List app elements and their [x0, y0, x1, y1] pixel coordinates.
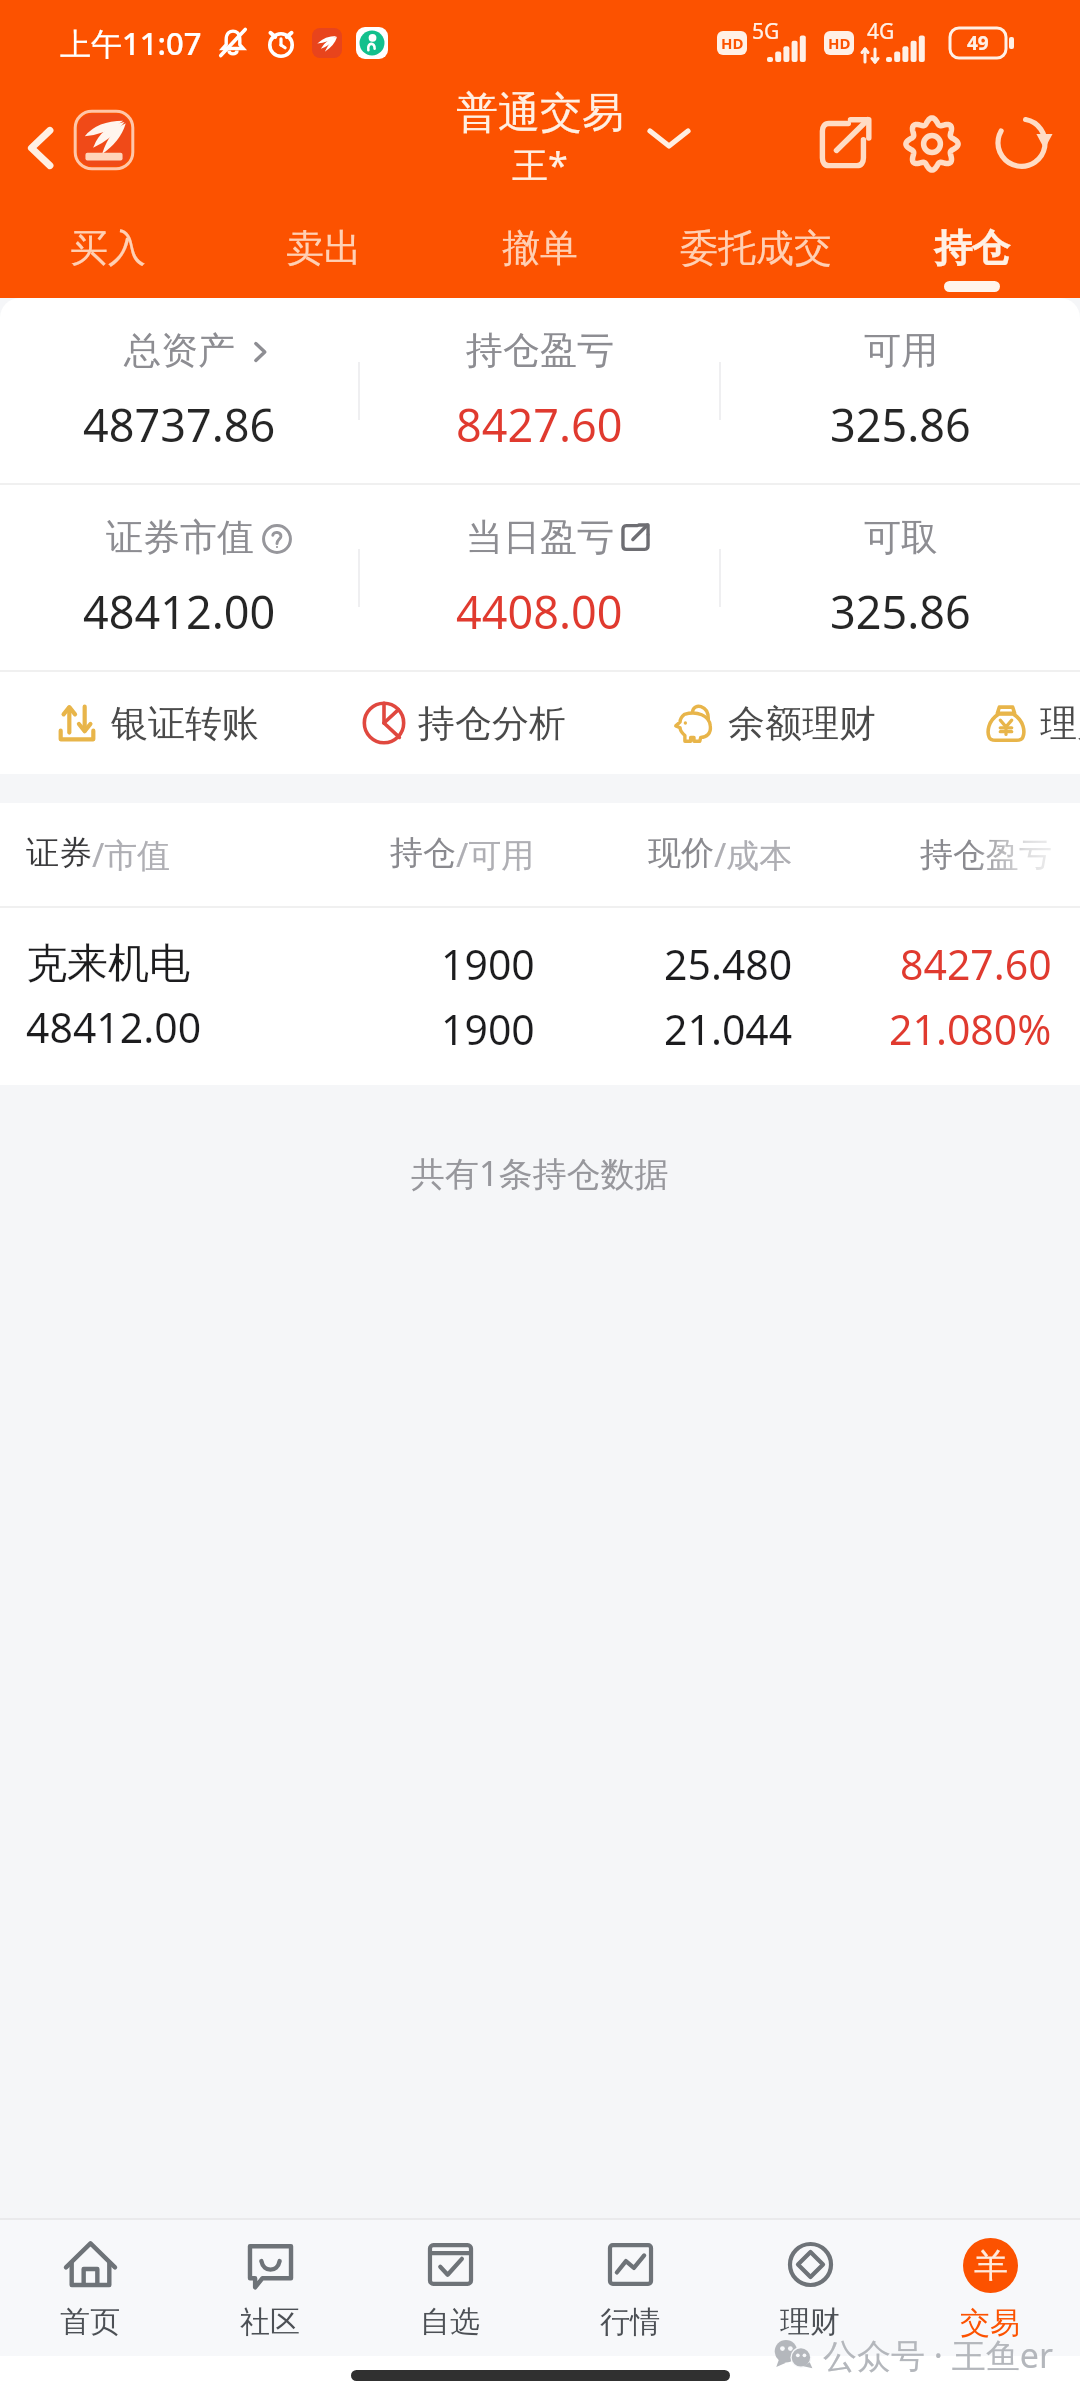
- staticText: HD: [721, 33, 744, 53]
- staticText: 共有1条持仓数据: [411, 1150, 669, 1196]
- button[interactable]: 可用: [721, 298, 1080, 483]
- staticText: 行情: [600, 2303, 660, 2341]
- staticText: 撤单: [502, 224, 578, 272]
- staticText: 可用: [864, 327, 938, 374]
- button[interactable]: 持仓: [864, 212, 1080, 300]
- staticText: 上午11:07: [60, 22, 202, 64]
- button[interactable]: Switch account: [604, 94, 694, 178]
- staticText: 持仓分析: [418, 700, 566, 747]
- staticText: 公众号 · 王鱼er: [823, 2332, 1054, 2376]
- staticText: /成本: [714, 832, 793, 877]
- staticText: 25.480: [664, 936, 793, 992]
- button[interactable]: 可取: [721, 485, 1080, 670]
- button[interactable]: Settings: [887, 99, 977, 189]
- staticText: 买入: [70, 224, 146, 272]
- button[interactable]: 社区: [180, 2220, 360, 2356]
- button[interactable]: 当日盈亏: [360, 485, 719, 670]
- staticText: 王*: [512, 140, 568, 189]
- staticText: 5G: [752, 17, 780, 46]
- button[interactable]: 持仓分析: [360, 672, 566, 774]
- staticText: 325.86: [830, 394, 971, 455]
- staticText: 1900: [441, 936, 535, 992]
- staticText: 1900: [441, 1001, 535, 1057]
- staticText: 可取: [864, 514, 938, 561]
- staticText: /市值: [92, 832, 171, 877]
- staticText: 自选: [420, 2303, 480, 2341]
- button[interactable]: 证券市值: [0, 485, 358, 670]
- button[interactable]: 羊: [900, 2220, 1080, 2356]
- button[interactable]: 卖出: [216, 212, 432, 300]
- staticText: 理财: [1040, 700, 1080, 747]
- staticText: 8427.60: [900, 936, 1052, 992]
- staticText: 现价: [648, 832, 714, 874]
- button[interactable]: 总资产: [0, 298, 358, 483]
- staticText: 理财: [780, 2303, 840, 2341]
- staticText: 21.080%: [889, 1001, 1052, 1057]
- button[interactable]: 理财: [720, 2220, 900, 2356]
- staticText: 社区: [240, 2303, 300, 2341]
- button[interactable]: Back: [8, 114, 76, 182]
- staticText: 首页: [60, 2303, 120, 2341]
- staticText: 49: [967, 30, 989, 56]
- button[interactable]: Refresh: [979, 99, 1069, 189]
- staticText: 交易: [960, 2304, 1020, 2342]
- staticText: 325.86: [830, 581, 971, 642]
- button[interactable]: 委托成交: [648, 212, 864, 300]
- staticText: 余额理财: [728, 700, 876, 747]
- staticText: 总资产: [124, 327, 235, 374]
- staticText: HD: [828, 33, 851, 53]
- staticText: 8427.60: [456, 394, 623, 455]
- button[interactable]: 持仓盈亏: [360, 298, 719, 483]
- staticText: 羊: [974, 2244, 1008, 2287]
- staticText: 银证转账: [111, 700, 259, 747]
- button[interactable]: East Money: [72, 108, 136, 172]
- button[interactable]: 克来机电: [26, 908, 1052, 1085]
- staticText: 持仓: [934, 224, 1010, 272]
- button[interactable]: 余额理财: [670, 672, 876, 774]
- staticText: 持仓盈亏: [466, 327, 614, 374]
- button[interactable]: Share: [799, 99, 889, 189]
- staticText: 持仓盈亏: [920, 834, 1052, 876]
- button[interactable]: 理财: [982, 672, 1080, 774]
- button[interactable]: 自选: [360, 2220, 540, 2356]
- button[interactable]: 买入: [0, 212, 216, 300]
- staticText: 委托成交: [680, 224, 832, 272]
- staticText: 证券市值: [106, 514, 254, 561]
- staticText: 持仓: [390, 832, 456, 874]
- button[interactable]: 撤单: [432, 212, 648, 300]
- staticText: 48412.00: [26, 999, 202, 1055]
- staticText: 克来机电: [26, 938, 190, 990]
- staticText: /可用: [456, 832, 535, 877]
- staticText: 证券: [26, 832, 92, 874]
- button[interactable]: 银证转账: [53, 672, 259, 774]
- staticText: 当日盈亏: [466, 514, 614, 561]
- button[interactable]: 行情: [540, 2220, 720, 2356]
- staticText: 4408.00: [456, 581, 623, 642]
- staticText: 普通交易: [456, 87, 624, 140]
- button[interactable]: 首页: [0, 2220, 180, 2356]
- staticText: 48737.86: [83, 394, 276, 455]
- staticText: 21.044: [664, 1001, 793, 1057]
- staticText: 48412.00: [83, 581, 276, 642]
- staticText: 4G: [867, 17, 895, 46]
- staticText: 卖出: [286, 224, 362, 272]
